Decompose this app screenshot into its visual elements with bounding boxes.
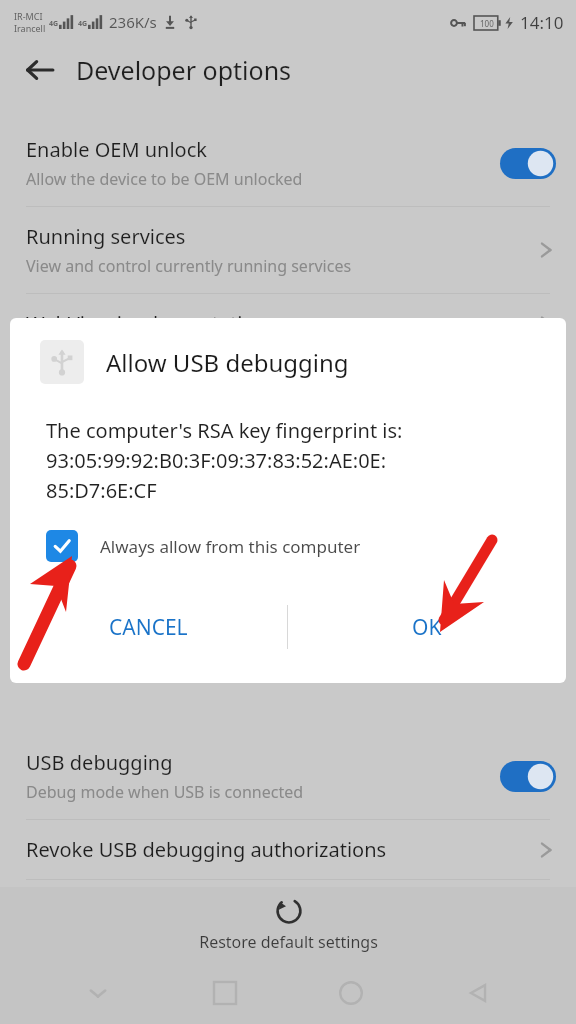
staticText: Always allow from this computer — [100, 535, 361, 558]
button[interactable]: Revoke USB debugging authorizations — [0, 820, 576, 879]
staticText: OK — [412, 613, 442, 642]
staticText: 4G — [49, 19, 59, 29]
staticText: Revoke USB debugging authorizations — [26, 836, 387, 863]
staticText: Allow USB debugging — [106, 346, 349, 379]
button[interactable]: Toggle on — [500, 148, 556, 179]
staticText: USB debugging — [26, 749, 173, 776]
button[interactable]: Back — [450, 965, 506, 1021]
button[interactable]: OK — [288, 600, 566, 654]
button[interactable]: Recents — [197, 965, 253, 1021]
staticText: WebView implementation — [26, 310, 267, 337]
button[interactable]: Toggle on — [500, 761, 556, 792]
staticText: The computer's RSA key fingerprint is: — [46, 417, 403, 444]
button[interactable]: Running services — [0, 207, 576, 293]
staticText: 14:10 — [520, 11, 564, 34]
staticText: View and control currently running servi… — [26, 255, 352, 277]
staticText: 93:05:99:92:B0:3F:09:37:83:52:AE:0E: — [46, 447, 387, 474]
button[interactable]: CANCEL — [10, 600, 287, 654]
button[interactable]: Home — [323, 965, 379, 1021]
staticText: 236K/s — [109, 12, 157, 32]
staticText: Enable OEM unlock — [26, 136, 207, 163]
staticText: Restore default settings — [199, 931, 378, 953]
button[interactable]: WebView implementation — [0, 294, 576, 353]
staticText: IR-MCI — [14, 10, 43, 22]
button[interactable]: Always prompt when connecting to — [0, 880, 576, 943]
button[interactable]: USB debugging — [0, 733, 576, 819]
staticText: Allow the device to be OEM unlocked — [26, 168, 303, 190]
staticText: 85:D7:6E:CF — [46, 477, 157, 504]
button[interactable]: Restore default settings — [0, 887, 576, 962]
staticText: 4G — [78, 19, 88, 29]
staticText: Debug mode when USB is connected — [26, 781, 304, 803]
button[interactable]: Enable OEM unlock — [0, 120, 576, 206]
button[interactable]: Always allow from this computer — [46, 530, 361, 562]
staticText: 100 — [480, 18, 494, 29]
staticText: Irancell — [14, 22, 46, 34]
staticText: Developer options — [76, 53, 292, 87]
staticText: Running services — [26, 223, 186, 250]
button[interactable]: Back — [14, 44, 66, 96]
staticText: CANCEL — [109, 613, 188, 642]
staticText: Always prompt when connecting to — [26, 898, 358, 925]
